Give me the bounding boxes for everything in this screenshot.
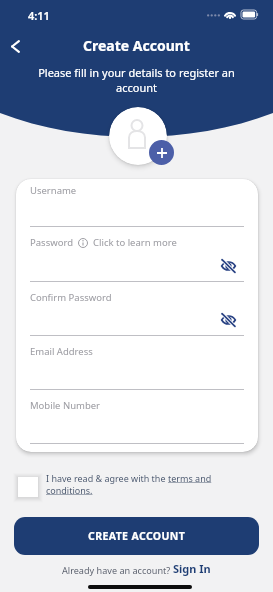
staticText: Username: [30, 184, 77, 197]
staticText: Already have an account?: [62, 564, 173, 576]
staticText: Please fill in your details to register …: [22, 65, 251, 95]
staticText: Confirm Password: [30, 291, 112, 304]
staticText: I have read & agree with the: [46, 472, 168, 484]
button[interactable]: Add photo: [149, 140, 174, 165]
button[interactable]: CREATE ACCOUNT: [14, 517, 259, 555]
staticText: CREATE ACCOUNT: [88, 529, 186, 543]
button[interactable]: Back: [2, 33, 28, 59]
staticText: Sign In: [173, 561, 211, 576]
staticText: Create Account: [83, 36, 190, 55]
button[interactable]: conditions.: [46, 484, 93, 496]
staticText: Password: [30, 236, 73, 249]
staticText: Email Address: [30, 345, 93, 358]
staticText: Click to learn more: [93, 236, 177, 249]
button[interactable]: Toggle password visibility: [219, 311, 237, 329]
button[interactable]: Toggle password visibility: [219, 257, 237, 275]
button[interactable]: Accept terms and conditions: [16, 475, 40, 499]
button[interactable]: Sign In: [173, 561, 211, 576]
button[interactable]: Profile photo: [109, 107, 167, 165]
staticText: 4:11: [28, 8, 50, 23]
button[interactable]: terms and: [168, 472, 212, 484]
staticText: Mobile Number: [30, 399, 101, 412]
